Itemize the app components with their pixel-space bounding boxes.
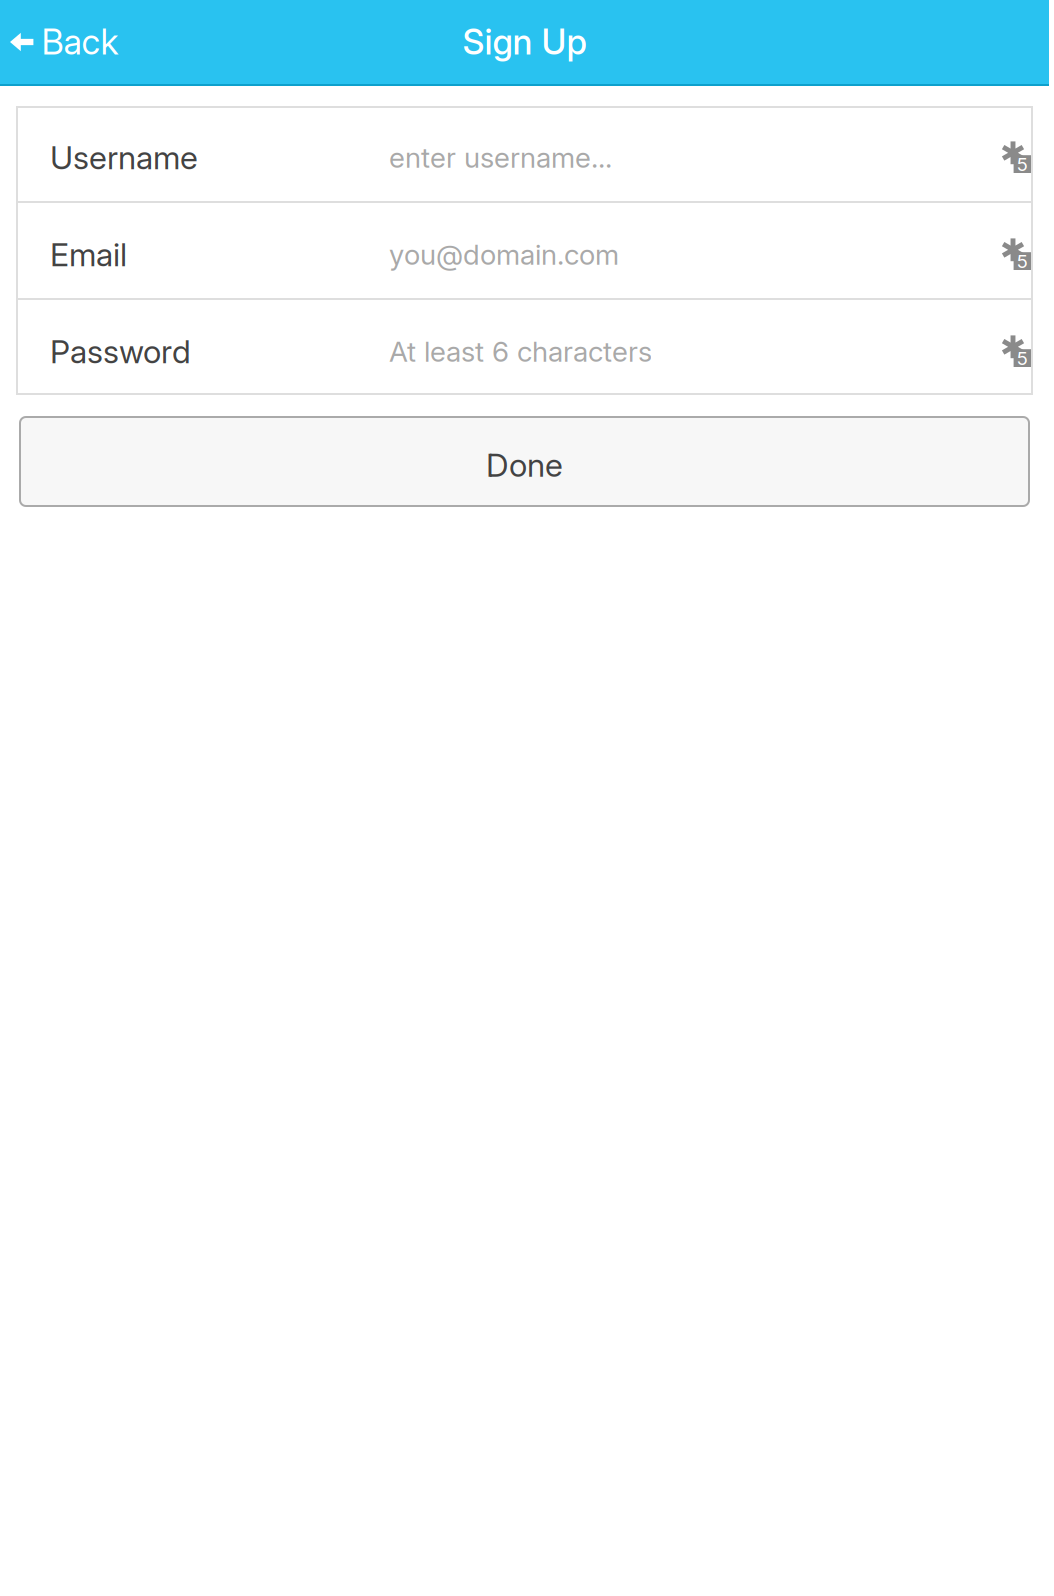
button[interactable]: Password: [16, 300, 1033, 395]
staticText: enter username...: [389, 141, 612, 174]
button[interactable]: Email: [16, 203, 1033, 298]
staticText: 5: [1017, 153, 1028, 175]
staticText: Sign Up: [462, 21, 586, 63]
staticText: At least 6 characters: [389, 335, 652, 368]
staticText: Password: [50, 332, 191, 371]
staticText: 5: [1017, 250, 1028, 272]
staticText: Back: [41, 21, 118, 63]
staticText: Email: [50, 235, 127, 274]
staticText: you@domain.com: [389, 238, 619, 271]
button[interactable]: Done: [19, 416, 1030, 507]
staticText: 5: [1017, 347, 1028, 369]
staticText: Done: [486, 446, 563, 484]
button[interactable]: Back: [0, 0, 134, 84]
staticText: Username: [50, 138, 198, 177]
button[interactable]: Username: [16, 106, 1033, 201]
